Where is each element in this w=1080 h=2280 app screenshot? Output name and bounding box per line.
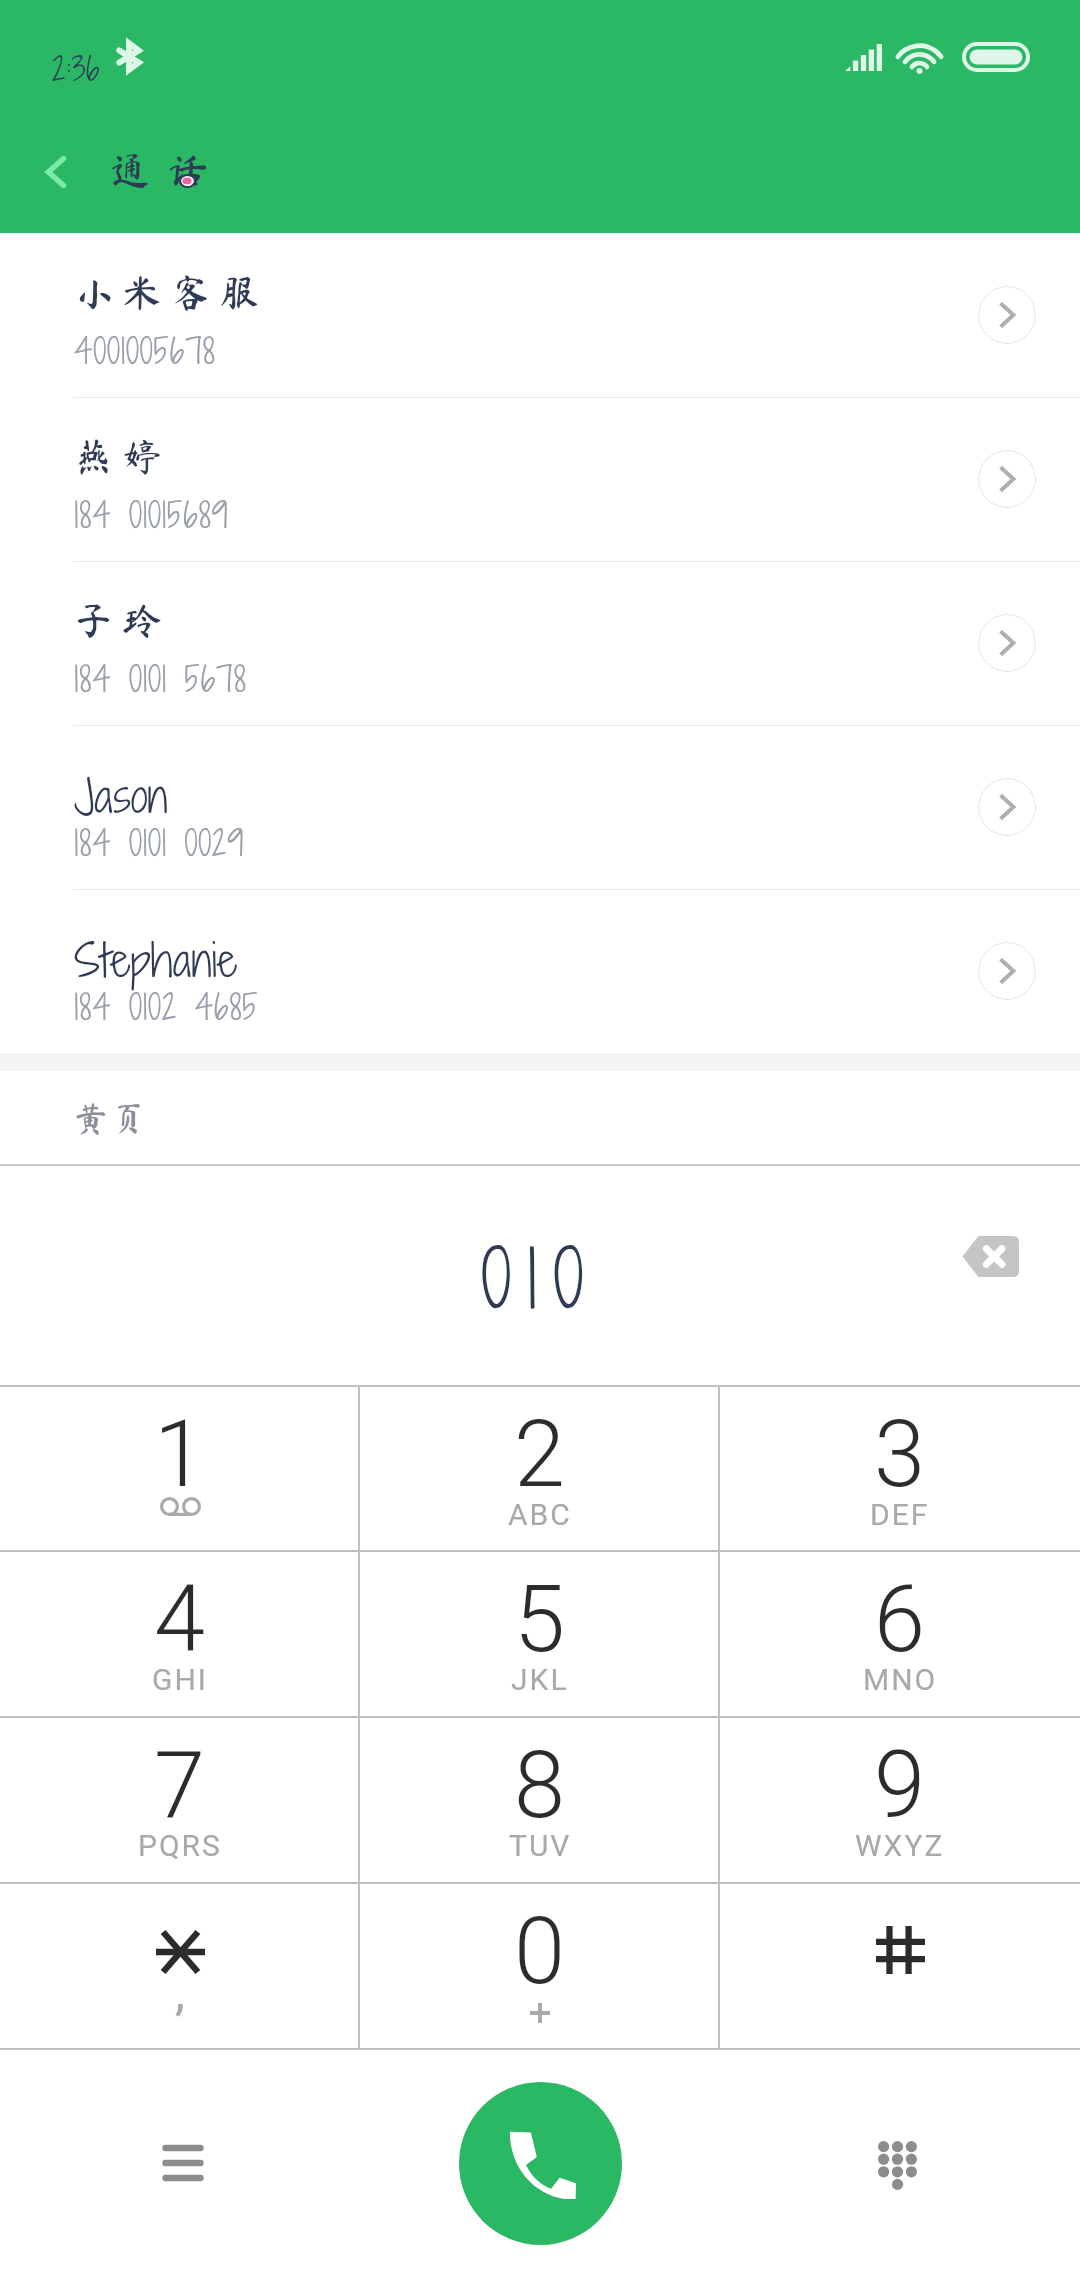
staticText: 184 0101 5678	[74, 655, 247, 703]
staticText: 小米客服	[74, 273, 269, 312]
staticText: 9	[874, 1732, 926, 1840]
button[interactable]: 6	[720, 1552, 1080, 1716]
button[interactable]	[720, 1884, 1080, 2048]
staticText: 2	[514, 1401, 566, 1509]
staticText: DEF	[870, 1497, 930, 1532]
button[interactable]: 3	[720, 1387, 1080, 1550]
staticText: 184 01015689	[74, 491, 229, 539]
staticText: PQRS	[138, 1828, 222, 1863]
staticText: GHI	[152, 1662, 208, 1697]
staticText: 6	[874, 1566, 926, 1674]
staticText: 184 0102 4685	[74, 983, 259, 1031]
button[interactable]: Back	[16, 132, 96, 212]
button[interactable]: 5	[360, 1552, 720, 1716]
staticText: Stephanie	[74, 928, 238, 992]
staticText: 010	[481, 1223, 600, 1335]
staticText: 8	[514, 1732, 566, 1840]
button[interactable]: 小米客服	[0, 233, 1080, 397]
staticText: MNO	[863, 1662, 938, 1697]
button[interactable]: 8	[360, 1718, 720, 1882]
staticText: 燕婷	[74, 437, 172, 476]
staticText: Jason	[74, 764, 168, 828]
button[interactable]: ,	[0, 1884, 360, 2048]
staticText: 3	[874, 1401, 926, 1509]
button[interactable]: Call log menu	[128, 2108, 238, 2218]
staticText: ,	[175, 1963, 185, 2022]
button[interactable]: Contact details	[978, 450, 1036, 508]
staticText: 5	[514, 1566, 566, 1674]
button[interactable]: Dialpad	[842, 2110, 952, 2220]
staticText: 通话	[110, 150, 226, 190]
staticText: 1	[154, 1401, 206, 1509]
button[interactable]: 0	[360, 1884, 720, 2048]
staticText: 黄页	[74, 1101, 150, 1135]
button[interactable]: 子玲	[0, 561, 1080, 725]
button[interactable]: Stephanie	[0, 889, 1080, 1053]
button[interactable]: 9	[720, 1718, 1080, 1882]
button[interactable]: Backspace	[940, 1206, 1040, 1306]
button[interactable]: Contact details	[978, 286, 1036, 344]
staticText: 4	[154, 1566, 206, 1674]
button[interactable]: 燕婷	[0, 397, 1080, 561]
staticText: JKL	[511, 1662, 569, 1697]
button[interactable]: Contact details	[978, 778, 1036, 836]
staticText: WXYZ	[855, 1828, 945, 1863]
staticText: TUV	[509, 1828, 572, 1863]
staticText: 子玲	[74, 601, 172, 640]
button[interactable]: Contact details	[978, 942, 1036, 1000]
button[interactable]: 4	[0, 1552, 360, 1716]
button[interactable]: Call	[459, 2082, 622, 2245]
staticText: 184 0101 0029	[74, 819, 245, 867]
button[interactable]: Contact details	[978, 614, 1036, 672]
button[interactable]: 2	[360, 1387, 720, 1550]
staticText: 2:36	[52, 46, 100, 91]
button[interactable]: 黄页	[0, 1071, 1080, 1164]
button[interactable]: 1	[0, 1387, 360, 1550]
staticText: ABC	[508, 1497, 572, 1532]
button[interactable]: Jason	[0, 725, 1080, 889]
staticText: 4001005678	[74, 327, 216, 375]
staticText: 0	[514, 1898, 566, 2006]
button[interactable]: 7	[0, 1718, 360, 1882]
staticText: 7	[154, 1732, 206, 1840]
